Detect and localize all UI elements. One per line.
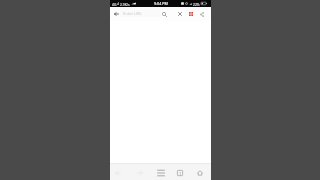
button[interactable]: Bookmarks <box>155 164 167 180</box>
staticText: Enter URL <box>123 11 142 16</box>
staticText: 4G <box>112 2 117 6</box>
button[interactable]: Back <box>111 7 121 21</box>
staticText: 22% <box>193 2 200 6</box>
staticText: 1 <box>179 171 182 176</box>
staticText: 2.9K/s <box>120 2 130 6</box>
button[interactable]: Enter URL <box>120 10 161 17</box>
staticText: 9:04 PM <box>154 1 168 6</box>
button[interactable]: Search <box>159 7 170 21</box>
button[interactable]: Tabs <box>174 164 186 180</box>
button[interactable]: Apps <box>185 7 196 21</box>
button[interactable]: Home <box>194 164 206 180</box>
button[interactable]: Close tab <box>174 7 185 21</box>
button[interactable]: Share <box>196 7 207 21</box>
